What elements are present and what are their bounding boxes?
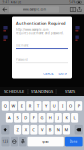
staticText: F: [33, 115, 35, 120]
button[interactable]: X: [22, 125, 29, 134]
button[interactable]: W: [10, 101, 17, 111]
button[interactable]: Q: [2, 101, 9, 111]
staticText: A: [8, 115, 11, 120]
button[interactable]: space: [27, 137, 64, 146]
staticText: P: [78, 103, 80, 108]
button[interactable]: R: [26, 101, 33, 111]
button[interactable]: G: [38, 113, 45, 123]
staticText: STATS: [65, 89, 75, 94]
button[interactable]: L: [71, 113, 78, 123]
staticText: V: [41, 127, 43, 132]
staticText: http://www.example.com: [16, 28, 48, 31]
button[interactable]: Share: [76, 4, 82, 14]
staticText: L: [74, 115, 76, 120]
staticText: Y: [45, 103, 47, 108]
button[interactable]: N: [55, 125, 62, 134]
button[interactable]: D: [22, 113, 29, 123]
staticText: CANCEL: [43, 72, 53, 75]
staticText: SCHEDULE: [4, 89, 24, 94]
button[interactable]: Back: [1, 4, 8, 14]
staticText: AT&T LTE: [11, 0, 21, 4]
staticText: C: [32, 127, 35, 132]
button[interactable]: Done: [65, 137, 83, 146]
button[interactable]: LOG IN: [58, 72, 68, 75]
button[interactable]: F: [30, 113, 37, 123]
button[interactable]: Numbers: [1, 137, 10, 146]
staticText: requires a username and password.: [16, 32, 64, 35]
button[interactable]: S: [14, 113, 21, 123]
staticText: Done: [70, 140, 78, 143]
button[interactable]: Z: [14, 125, 21, 134]
staticText: K: [65, 115, 67, 120]
button[interactable]: Delete: [75, 125, 83, 134]
staticText: B: [49, 127, 52, 132]
button[interactable]: P: [75, 101, 82, 111]
button[interactable]: B: [47, 125, 54, 134]
button[interactable]: H: [47, 113, 54, 123]
staticText: D: [24, 115, 27, 120]
staticText: space: [42, 140, 49, 143]
staticText: Z: [16, 127, 18, 132]
staticText: www.example.com: [22, 8, 45, 11]
button[interactable]: K: [63, 113, 70, 123]
staticText: 54%: [69, 0, 75, 4]
button[interactable]: www.example.com: [9, 6, 59, 13]
button[interactable]: C: [30, 125, 37, 134]
staticText: LOG IN: [58, 72, 67, 75]
staticText: G: [40, 115, 43, 120]
staticText: H: [49, 115, 52, 120]
staticText: E: [21, 103, 23, 108]
button[interactable]: V: [38, 125, 45, 134]
button[interactable]: E: [18, 101, 25, 111]
button[interactable]: SCHEDULE: [0, 87, 28, 96]
staticText: Username: [16, 44, 29, 47]
button[interactable]: Y: [43, 101, 50, 111]
staticText: U: [53, 103, 56, 108]
button[interactable]: CANCEL: [43, 72, 54, 75]
staticText: T: [37, 103, 39, 108]
button[interactable]: Tabs: [69, 4, 76, 14]
button[interactable]: T: [34, 101, 41, 111]
staticText: O: [69, 103, 72, 108]
button[interactable]: O: [67, 101, 74, 111]
button[interactable]: J: [55, 113, 62, 123]
staticText: R: [29, 103, 31, 108]
staticText: Authentication Required: [16, 20, 65, 26]
button[interactable]: STATS: [56, 87, 84, 96]
staticText: 9:41: [2, 0, 9, 4]
staticText: J: [58, 115, 59, 120]
button[interactable]: Next keyboard: [11, 137, 18, 146]
staticText: S: [17, 115, 19, 120]
button[interactable]: STANDINGS: [28, 87, 56, 96]
button[interactable]: U: [51, 101, 58, 111]
staticText: STANDINGS: [31, 89, 53, 94]
staticText: M: [64, 127, 68, 132]
button[interactable]: I: [59, 101, 66, 111]
button[interactable]: M: [63, 125, 70, 134]
staticText: W: [11, 103, 15, 108]
staticText: Password: [16, 58, 28, 61]
staticText: 123: [2, 140, 8, 143]
staticText: N: [57, 127, 60, 132]
button[interactable]: Shift: [1, 125, 9, 134]
button[interactable]: A: [6, 113, 13, 123]
staticText: I: [62, 103, 63, 108]
staticText: Q: [4, 103, 7, 108]
staticText: X: [25, 127, 27, 132]
button[interactable]: Dictation: [19, 137, 26, 146]
